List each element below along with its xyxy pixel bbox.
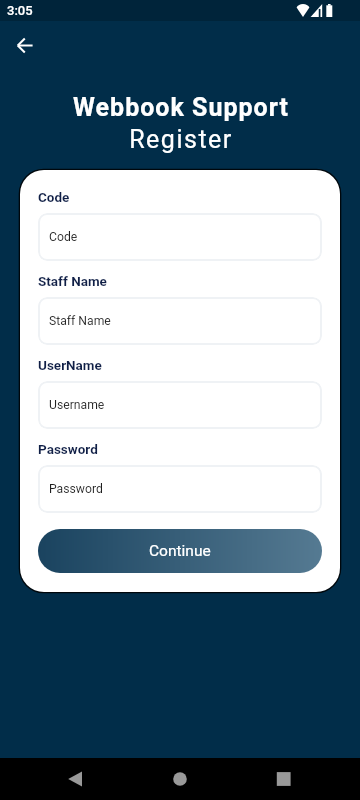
button[interactable]: Continue [38, 529, 322, 573]
staticText: 3:05 [7, 3, 33, 18]
button[interactable]: Staff Name [38, 297, 322, 345]
staticText: Staff Name [49, 314, 111, 328]
staticText: Code [49, 230, 78, 244]
staticText: UserName [38, 357, 102, 373]
button[interactable]: Password [38, 465, 322, 513]
staticText: Username [49, 398, 105, 412]
staticText: Code [38, 189, 70, 205]
staticText: Continue [149, 542, 211, 560]
button[interactable]: Code [38, 213, 322, 261]
staticText: Staff Name [38, 273, 107, 289]
staticText: Webbook Support [73, 93, 289, 122]
staticText: Password [49, 482, 103, 496]
button[interactable]: Username [38, 381, 322, 429]
button[interactable]: Back [2, 23, 47, 68]
staticText: Register [129, 125, 233, 154]
staticText: Password [38, 441, 98, 457]
